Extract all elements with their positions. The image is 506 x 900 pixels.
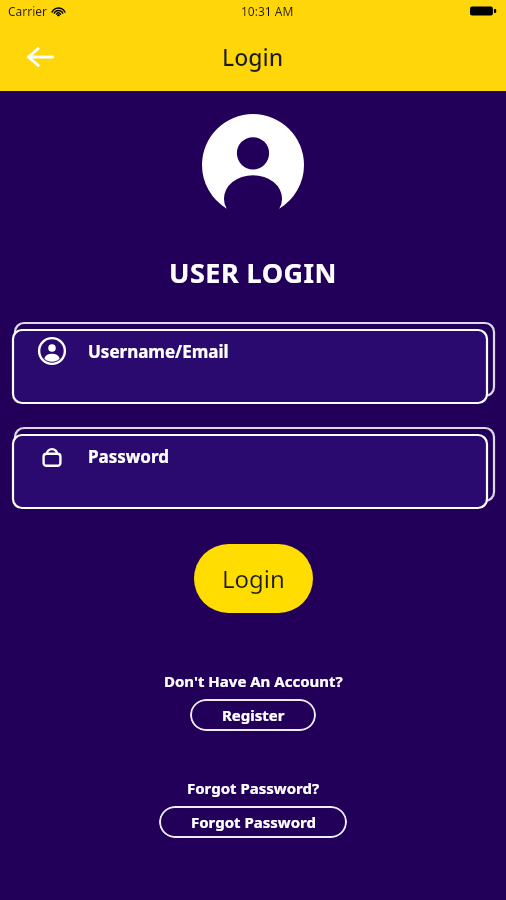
staticText: Login (222, 562, 285, 595)
button[interactable]: Login (194, 544, 313, 613)
staticText: Username/Email (88, 340, 229, 363)
staticText: Password (88, 445, 169, 468)
button[interactable]: Back (16, 33, 64, 81)
staticText: 10:31 AM (241, 3, 294, 19)
staticText: Carrier (8, 3, 48, 19)
staticText: Forgot Password? (187, 778, 320, 798)
staticText: Register (222, 705, 285, 725)
button[interactable]: Password (0, 418, 506, 513)
staticText: Forgot Password (191, 812, 316, 832)
button[interactable]: Register (190, 699, 316, 731)
staticText: USER LOGIN (0, 254, 506, 291)
button[interactable]: Username/Email (0, 313, 506, 408)
button[interactable]: Forgot Password (159, 806, 347, 838)
staticText: Login (222, 41, 284, 72)
staticText: Don't Have An Account? (164, 671, 343, 691)
